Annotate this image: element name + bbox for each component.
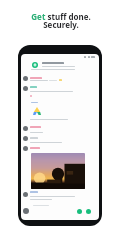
button[interactable]: Contact [23, 86, 28, 91]
button[interactable]: Contact [23, 208, 29, 214]
button[interactable]: Contact [23, 126, 28, 131]
button[interactable]: Drive file [33, 107, 41, 115]
staticText: Get stuff done. Securely. [31, 11, 91, 30]
button[interactable]: Send [86, 209, 91, 214]
button[interactable]: Secure [32, 62, 38, 68]
button[interactable]: Contact [23, 146, 28, 151]
button[interactable]: Quick reply [77, 209, 82, 214]
button[interactable]: Contact [23, 136, 28, 141]
button[interactable]: Contact [23, 192, 28, 197]
button[interactable]: Contact [23, 76, 28, 81]
